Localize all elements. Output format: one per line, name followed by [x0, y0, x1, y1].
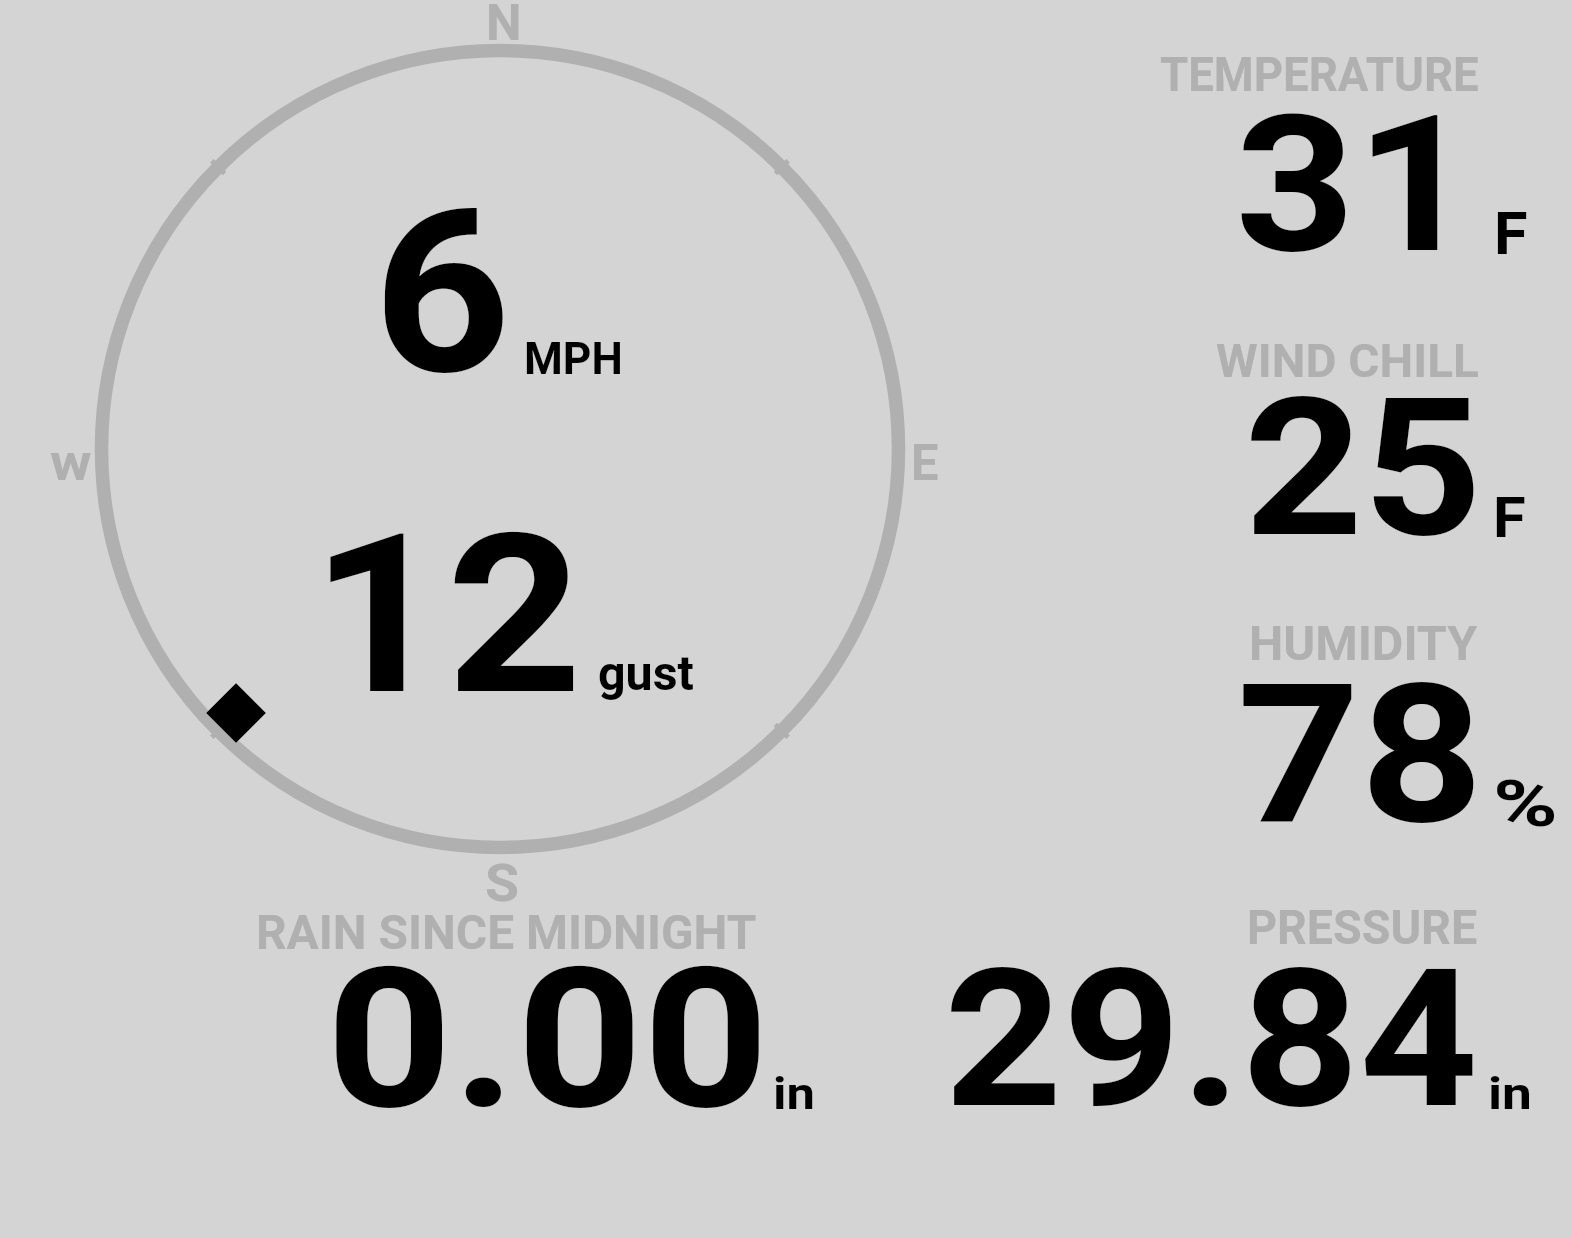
- staticText: in: [773, 1067, 816, 1120]
- staticText: S: [485, 852, 520, 914]
- staticText: 31: [1235, 75, 1476, 296]
- button[interactable]: Pressure 29.84 inches: [930, 890, 1550, 1120]
- staticText: 29.84: [944, 928, 1479, 1151]
- button[interactable]: Temperature 31 degrees Fahrenheit: [1140, 40, 1570, 265]
- staticText: F: [1494, 199, 1528, 268]
- staticText: in: [1488, 1067, 1533, 1120]
- staticText: 25: [1244, 357, 1483, 581]
- staticText: w: [50, 434, 93, 492]
- staticText: E: [911, 433, 939, 492]
- button[interactable]: Wind direction compass, 6 miles per hour…: [90, 40, 910, 860]
- staticText: F: [1493, 485, 1526, 550]
- staticText: RAIN SINCE MIDNIGHT: [256, 905, 757, 961]
- button[interactable]: Humidity 78 percent: [1140, 608, 1570, 833]
- staticText: PRESSURE: [1247, 900, 1477, 956]
- staticText: N: [486, 0, 522, 52]
- staticText: %: [1493, 766, 1558, 842]
- staticText: gust: [598, 646, 695, 702]
- staticText: 0.00: [326, 925, 769, 1154]
- staticText: HUMIDITY: [1249, 616, 1478, 672]
- staticText: TEMPERATURE: [1160, 46, 1479, 102]
- staticText: 6: [373, 162, 511, 426]
- button[interactable]: Wind chill 25 degrees Fahrenheit: [1140, 325, 1570, 550]
- staticText: 12: [311, 486, 583, 745]
- staticText: WIND CHILL: [1216, 333, 1479, 388]
- staticText: MPH: [524, 332, 623, 385]
- staticText: 78: [1237, 642, 1483, 868]
- button[interactable]: Rain since midnight 0.00 inches: [240, 895, 830, 1120]
